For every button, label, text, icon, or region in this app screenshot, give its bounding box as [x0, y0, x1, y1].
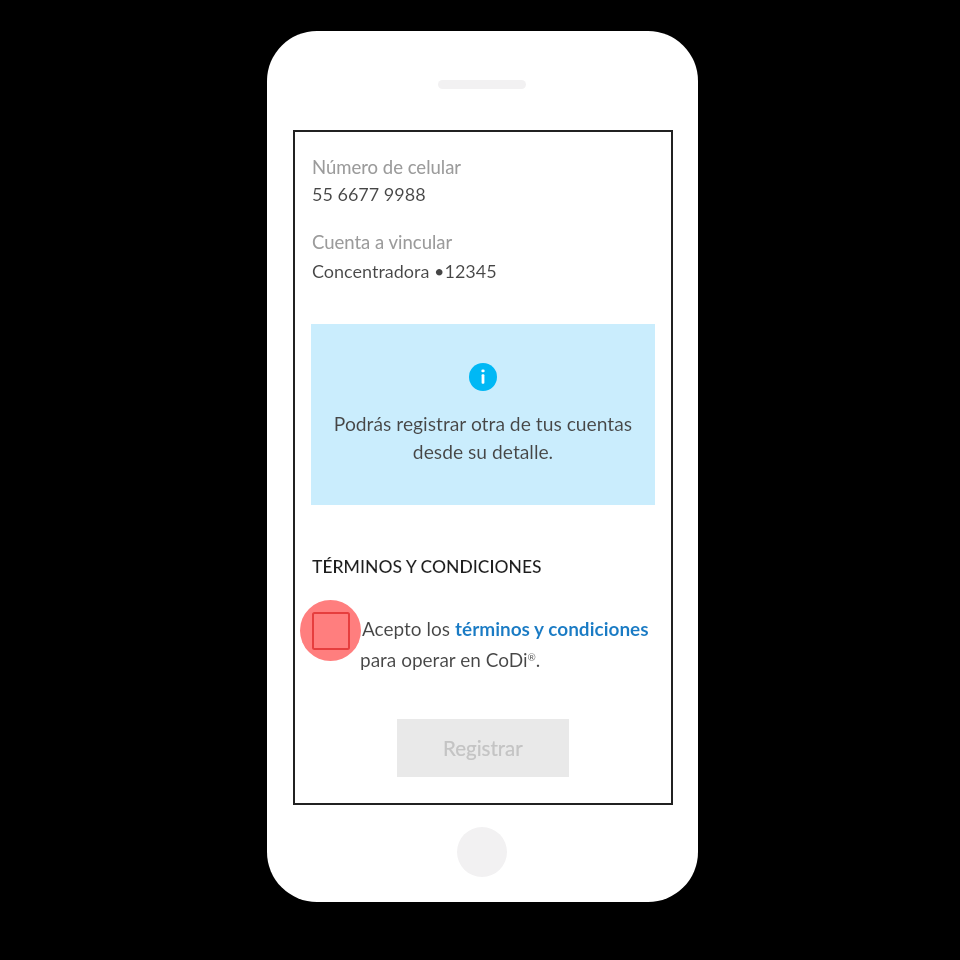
other: Información [469, 363, 497, 391]
staticText: Cuenta a vincular [312, 231, 453, 253]
staticText: Concentradora •12345 [312, 260, 497, 282]
staticText: términos y condiciones [455, 617, 649, 640]
staticText: Acepto los [362, 617, 455, 640]
button[interactable]: Aceptar términos y condiciones [300, 600, 361, 661]
button[interactable]: Acepto los [362, 617, 649, 640]
staticText: Registrar [443, 736, 523, 761]
button[interactable]: Registrar [397, 719, 569, 777]
button[interactable]: Home [457, 827, 507, 877]
staticText: 55 6677 9988 [312, 183, 426, 205]
staticText: TÉRMINOS Y CONDICIONES [312, 556, 542, 577]
staticText: para operar en CoDi®. [360, 648, 541, 671]
staticText: Número de celular [312, 156, 462, 178]
staticText: Podrás registrar otra de tus cuentas des… [328, 412, 638, 463]
